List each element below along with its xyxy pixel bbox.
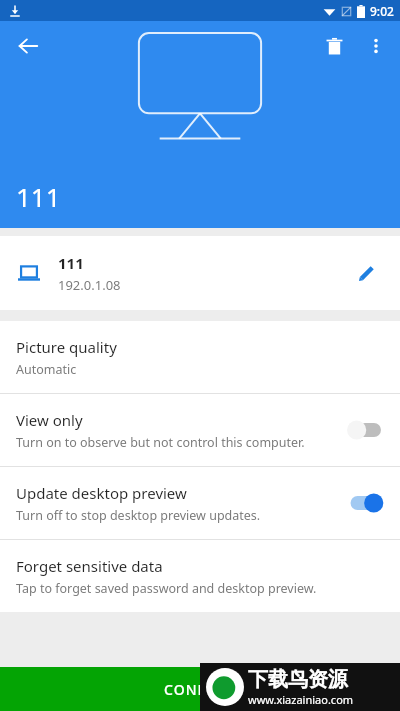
staticText: www.xiazainiao.com <box>248 692 354 707</box>
button[interactable]: Edit <box>344 250 390 296</box>
button[interactable]: Delete <box>312 24 356 68</box>
staticText: Automatic <box>16 361 77 378</box>
button[interactable]: Forget sensitive data <box>0 540 400 612</box>
button[interactable]: Switch off <box>346 418 384 442</box>
button[interactable]: Picture quality <box>0 321 400 393</box>
button[interactable]: Update desktop preview <box>0 467 400 539</box>
staticText: Tap to forget saved password and desktop… <box>16 580 317 597</box>
button[interactable]: Switch on <box>346 491 384 515</box>
button[interactable]: Back <box>8 26 48 66</box>
staticText: Picture quality <box>16 337 117 357</box>
staticText: Forget sensitive data <box>16 556 163 576</box>
staticText: 9:02 <box>370 3 394 19</box>
staticText: 111 <box>16 179 61 214</box>
staticText: Turn on to observe but not control this … <box>16 434 305 451</box>
staticText: 111 <box>58 253 84 273</box>
staticText: Update desktop preview <box>16 483 187 503</box>
button[interactable]: More options <box>356 26 396 66</box>
button[interactable]: CONNECT <box>0 667 400 711</box>
staticText: 192.0.1.08 <box>58 276 121 294</box>
staticText: Turn off to stop desktop preview updates… <box>16 507 261 524</box>
staticText: 下载鸟资源 <box>248 667 348 692</box>
staticText: CONNECT <box>164 680 237 699</box>
button[interactable]: View only <box>0 394 400 466</box>
staticText: View only <box>16 410 83 430</box>
button[interactable]: 111 <box>0 236 400 310</box>
